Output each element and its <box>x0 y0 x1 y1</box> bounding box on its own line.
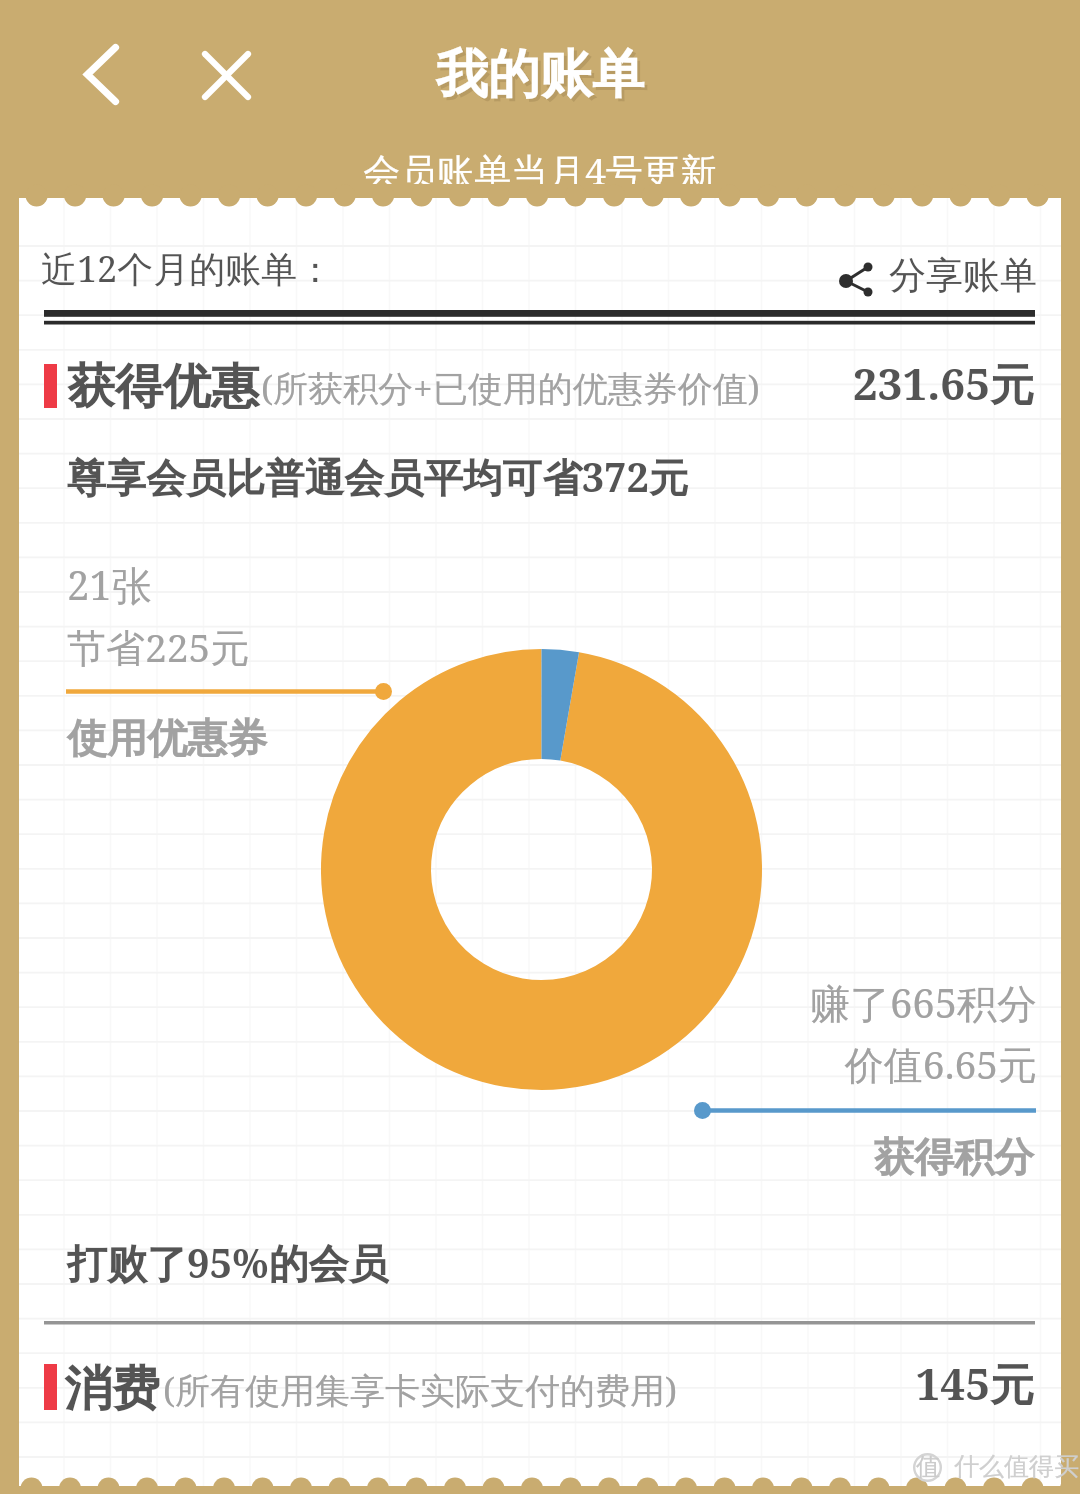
staticText: 我的账单 <box>3 45 1080 111</box>
button[interactable]: Close <box>196 45 257 106</box>
staticText: 打败了95%的会员 <box>67 1235 389 1290</box>
staticText: 值 <box>916 1452 940 1481</box>
staticText: 获得积分 <box>600 1132 1034 1182</box>
staticText: 145元 <box>600 1353 1034 1413</box>
staticText: 消费 <box>64 1359 160 1419</box>
staticText: 获得优惠 <box>67 357 259 417</box>
staticText: 使用优惠券 <box>67 713 267 763</box>
staticText: 21张 <box>67 557 152 612</box>
staticText: 尊享会员比普通会员平均可省372元 <box>67 450 689 504</box>
staticText: 什么值得买 <box>954 1451 1079 1482</box>
staticText: 231.65元 <box>600 353 1034 413</box>
button[interactable]: 分享账单 <box>830 250 1040 304</box>
staticText: (所有使用集享卡实际支付的费用) <box>163 1366 678 1414</box>
staticText: 赚了665积分 <box>600 975 1037 1030</box>
button[interactable]: Back <box>74 34 129 115</box>
staticText: 我的账单 <box>0 42 1080 108</box>
staticText: 节省225元 <box>67 620 250 673</box>
staticText: 价值6.65元 <box>600 1037 1037 1090</box>
staticText: 近12个月的账单： <box>41 244 334 293</box>
staticText: 分享账单 <box>889 252 1037 299</box>
staticText: 会员账单当月4号更新 <box>0 145 1080 196</box>
staticText: (所获积分+已使用的优惠券价值) <box>261 364 760 412</box>
